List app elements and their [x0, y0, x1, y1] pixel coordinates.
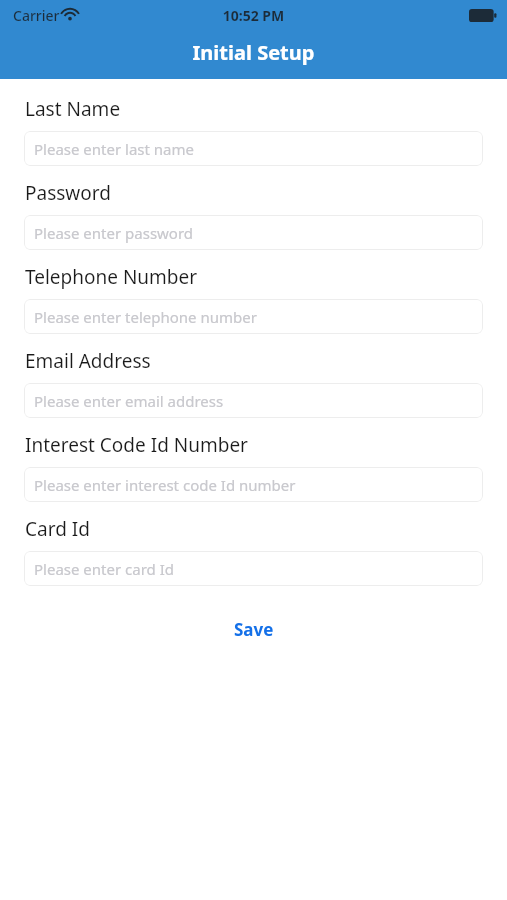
button[interactable]: Please enter interest code Id number — [24, 467, 483, 502]
button[interactable]: Please enter last name — [24, 131, 483, 166]
staticText: Last Name — [25, 96, 121, 122]
button[interactable]: Please enter email address — [24, 383, 483, 418]
staticText: Email Address — [25, 348, 151, 374]
staticText: Card Id — [25, 516, 90, 542]
staticText: Please enter interest code Id number — [34, 475, 296, 495]
button[interactable]: Please enter card Id — [24, 551, 483, 586]
staticText: Initial Setup — [0, 39, 507, 66]
staticText: Carrier — [13, 6, 60, 25]
staticText: Telephone Number — [25, 264, 198, 290]
other: Battery full — [469, 9, 497, 22]
staticText: Please enter telephone number — [34, 307, 257, 327]
staticText: Please enter last name — [34, 139, 195, 159]
staticText: Save — [234, 618, 274, 641]
button[interactable]: Please enter password — [24, 215, 483, 250]
button[interactable]: Please enter telephone number — [24, 299, 483, 334]
staticText: 10:52 PM — [0, 6, 507, 25]
staticText: Please enter card Id — [34, 559, 175, 579]
staticText: Interest Code Id Number — [25, 432, 248, 458]
staticText: Password — [25, 180, 111, 206]
staticText: Please enter password — [34, 223, 194, 243]
other: Wi-Fi signal — [62, 8, 78, 20]
staticText: Please enter email address — [34, 391, 224, 411]
button[interactable]: Save — [216, 612, 292, 647]
